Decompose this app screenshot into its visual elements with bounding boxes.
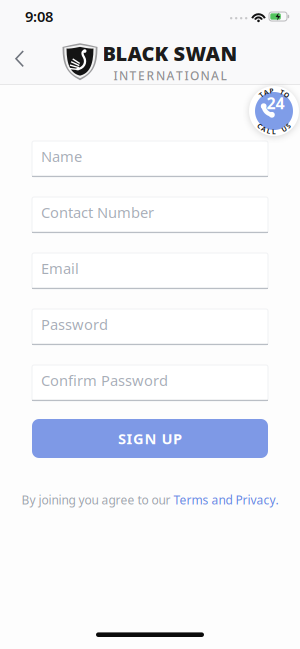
staticText: A	[271, 86, 276, 95]
button[interactable]: Back	[0, 32, 25, 86]
staticText: Confirm Password	[41, 370, 168, 390]
staticText: S	[118, 429, 126, 448]
staticText: A	[166, 68, 174, 83]
staticText: N	[156, 68, 165, 83]
staticText: T	[129, 68, 136, 83]
staticText: R	[146, 68, 154, 83]
staticText: T	[272, 86, 276, 95]
staticText: I	[126, 429, 132, 448]
staticText: L	[272, 127, 276, 136]
button[interactable]: Terms and Privacy.	[173, 492, 278, 508]
staticText: 9:08	[25, 6, 53, 26]
staticText: N	[119, 68, 128, 83]
staticText: U	[271, 127, 276, 136]
staticText: Password	[41, 314, 108, 334]
staticText: L	[272, 127, 276, 136]
button[interactable]: Email	[32, 253, 268, 289]
staticText: T	[272, 86, 276, 95]
button[interactable]: Name	[32, 141, 268, 177]
staticText: By joining you agree to our	[21, 492, 170, 508]
staticText: Name	[41, 146, 82, 166]
staticText: A	[271, 127, 276, 136]
staticText: E	[138, 68, 145, 83]
staticText: I	[184, 68, 188, 83]
staticText: L	[220, 68, 226, 83]
staticText: 24	[266, 92, 284, 114]
staticText: O	[190, 68, 199, 83]
button[interactable]: Contact Number	[32, 197, 268, 233]
staticText: U	[161, 429, 172, 448]
staticText: N	[144, 429, 156, 448]
staticText: S	[272, 127, 276, 136]
staticText	[273, 86, 275, 95]
staticText: C	[272, 127, 276, 136]
button[interactable]: Tap to call us 24 hours	[249, 86, 299, 136]
staticText: G	[133, 429, 144, 448]
button[interactable]: Password	[32, 309, 268, 345]
staticText: A	[211, 68, 219, 83]
staticText: P	[272, 86, 276, 95]
staticText: Terms and Privacy.	[173, 492, 278, 508]
staticText: P	[173, 429, 182, 448]
staticText: I	[113, 68, 117, 83]
button[interactable]: Confirm Password	[32, 365, 268, 401]
staticText	[273, 127, 275, 136]
staticText: BLACK SWAN	[102, 40, 237, 67]
staticText: Contact Number	[41, 202, 154, 222]
staticText: Email	[41, 258, 79, 278]
staticText: O	[271, 86, 276, 95]
staticText: N	[200, 68, 209, 83]
staticText: T	[176, 68, 183, 83]
button[interactable]: S	[32, 419, 268, 458]
